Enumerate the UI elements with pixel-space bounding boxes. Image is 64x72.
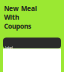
staticText: New Meal With Coupons xyxy=(4,4,37,31)
staticText: label xyxy=(5,45,13,50)
